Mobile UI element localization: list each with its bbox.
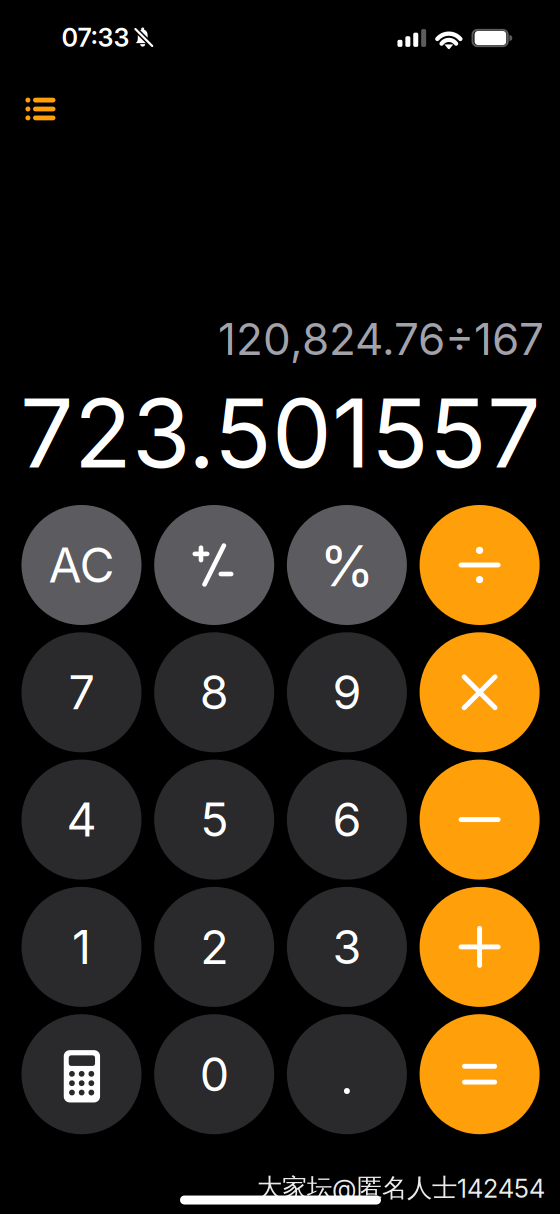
staticText: 9 (332, 664, 361, 721)
button[interactable]: 4 (21, 760, 141, 880)
button[interactable]: 1 (21, 887, 141, 1007)
staticText: 8 (200, 664, 229, 721)
staticText: 0 (200, 1046, 229, 1102)
button[interactable]: 8 (154, 632, 274, 752)
button[interactable]: Decimal point (287, 1014, 407, 1134)
staticText: 07:33 (61, 22, 129, 53)
button[interactable]: 0 (154, 1014, 274, 1134)
button[interactable]: 6 (287, 760, 407, 880)
staticText: AC (48, 536, 114, 594)
button[interactable]: 2 (154, 887, 274, 1007)
staticText: 1 (72, 919, 91, 975)
button[interactable]: Plus (420, 887, 540, 1007)
button[interactable]: Multiply (420, 632, 540, 752)
button[interactable]: 5 (154, 760, 274, 880)
button[interactable]: AC (21, 505, 141, 625)
button[interactable]: Keypad (21, 1014, 141, 1134)
staticText: 5 (200, 791, 228, 848)
staticText: 3 (332, 919, 361, 975)
button[interactable]: % (287, 505, 407, 625)
staticText: 大家坛@匿名人士142454 (257, 1172, 545, 1204)
staticText: 6 (332, 791, 361, 848)
button[interactable]: 3 (287, 887, 407, 1007)
button[interactable]: 7 (21, 632, 141, 752)
button[interactable]: Plus minus (154, 505, 274, 625)
button[interactable]: Divide (420, 505, 540, 625)
button[interactable]: Equals (420, 1014, 540, 1134)
staticText: 723.501557 (20, 376, 541, 490)
staticText: 7 (68, 664, 94, 721)
staticText: 2 (200, 919, 228, 975)
button[interactable]: 9 (287, 632, 407, 752)
button[interactable]: History (9, 82, 71, 139)
staticText: 4 (66, 791, 96, 848)
staticText: % (319, 532, 374, 600)
staticText: 120,824.76÷167 (218, 312, 544, 366)
button[interactable]: Minus (420, 760, 540, 880)
